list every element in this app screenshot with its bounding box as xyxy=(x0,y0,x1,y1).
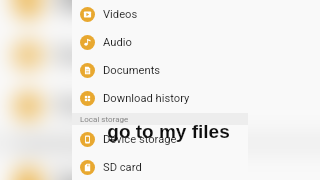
staticText: Audio xyxy=(56,0,109,16)
button[interactable]: Documents xyxy=(0,29,320,80)
button[interactable]: Audio xyxy=(72,28,248,56)
staticText: Local storage xyxy=(80,115,129,124)
staticText: go to my files xyxy=(107,121,230,142)
staticText: Device storage xyxy=(103,133,177,146)
staticText: SD card xyxy=(103,161,142,174)
staticText: Device storage xyxy=(56,169,191,180)
staticText: Documents xyxy=(103,64,161,77)
button[interactable]: Device storage xyxy=(72,125,248,153)
staticText: Videos xyxy=(103,8,138,21)
staticText: Local storage xyxy=(14,136,104,152)
button[interactable]: Videos xyxy=(72,0,248,28)
button[interactable]: Download history xyxy=(72,84,248,112)
button[interactable]: Device storage xyxy=(0,154,320,180)
staticText: Documents xyxy=(56,43,162,67)
button[interactable]: SD card xyxy=(72,153,248,180)
staticText: Audio xyxy=(103,36,132,49)
staticText: Download history xyxy=(103,92,190,105)
button[interactable]: Download history xyxy=(0,80,320,131)
button[interactable]: Documents xyxy=(72,56,248,84)
button[interactable]: Audio xyxy=(0,0,320,29)
staticText: Download history xyxy=(56,94,215,118)
